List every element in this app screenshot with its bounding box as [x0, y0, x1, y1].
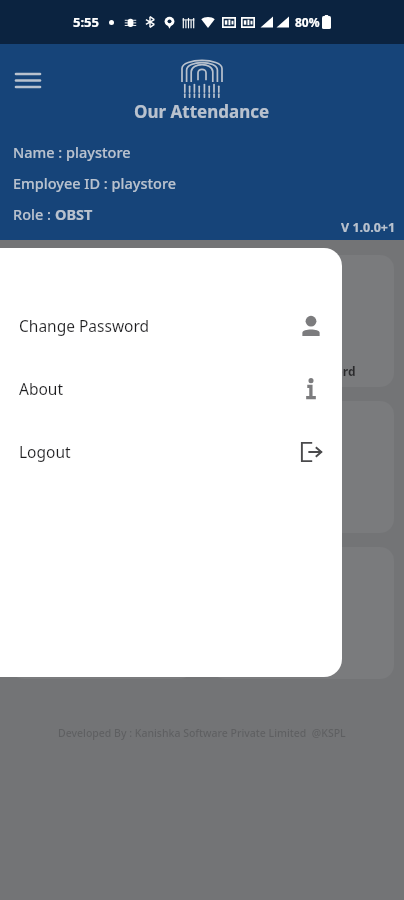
button[interactable]: About	[0, 357, 342, 420]
staticText: Name : playstore	[13, 142, 131, 162]
staticText: Our Attendance	[134, 100, 270, 123]
staticText: Change Password	[250, 363, 356, 379]
button[interactable]: Mark Attendance	[10, 255, 193, 387]
button[interactable]: Apply Leave	[211, 547, 394, 679]
button[interactable]: Notice	[10, 547, 193, 679]
button[interactable]: Change Password	[211, 255, 394, 387]
staticText: Developed By : Kanishka Software Private…	[58, 726, 346, 740]
button[interactable]: Salary Slip	[211, 401, 394, 533]
button[interactable]: Change Password	[0, 294, 342, 357]
staticText: 80%	[295, 14, 320, 30]
staticText: OBST	[55, 204, 93, 224]
staticText: Role :	[13, 204, 55, 224]
staticText: V 1.0.0+1	[341, 219, 396, 236]
button[interactable]: Logout	[0, 420, 342, 483]
staticText: Change Password	[19, 315, 150, 336]
staticText: About	[19, 378, 63, 399]
staticText: Employee ID : playstore	[13, 173, 177, 193]
staticText: 5:55	[73, 13, 99, 31]
staticText: Logout	[19, 441, 71, 462]
button[interactable]: Attendance Report	[10, 401, 193, 533]
button[interactable]: Open navigation menu	[8, 60, 48, 100]
staticText: Apply Leave	[266, 655, 339, 671]
